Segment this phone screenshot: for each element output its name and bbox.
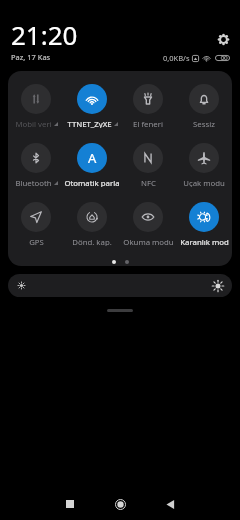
staticText: GPS (29, 237, 44, 246)
staticText: Bluetooth (15, 178, 52, 187)
button[interactable]: Uçak modu (176, 143, 232, 187)
staticText: Sessiz (193, 119, 215, 128)
staticText: Mobil veri (15, 119, 52, 128)
button[interactable]: NFC (120, 143, 176, 187)
staticText: A (88, 149, 97, 167)
staticText: Paz, 17 Kas (11, 52, 51, 62)
button[interactable]: Brightness (8, 274, 232, 297)
staticText: Uçak modu (183, 178, 225, 187)
button[interactable]: Sessiz (176, 84, 232, 128)
staticText: 0,0KB/s (163, 53, 190, 63)
button[interactable]: GPS (8, 202, 64, 246)
staticText: Okuma modu (123, 237, 174, 246)
button[interactable]: El feneri (120, 84, 176, 128)
button[interactable]: Back (158, 492, 182, 516)
button[interactable]: Settings (212, 28, 234, 50)
button[interactable]: Home (108, 492, 132, 516)
staticText: El feneri (133, 119, 163, 128)
button[interactable]: Karanlık mod (176, 202, 232, 246)
button[interactable]: Bluetooth (8, 143, 64, 187)
staticText: Dönd. kap. (72, 237, 112, 246)
staticText: NFC (141, 178, 156, 187)
button[interactable]: Mobil veri (8, 84, 64, 128)
button[interactable]: Dönd. kap. (64, 202, 120, 246)
button[interactable]: Recents (58, 492, 82, 516)
staticText: Karanlık mod (180, 237, 229, 246)
staticText: 21:20 (11, 17, 78, 52)
button[interactable]: Okuma modu (120, 202, 176, 246)
staticText: Otomatik parla (64, 178, 120, 187)
staticText: TTNET_ZyXE (67, 119, 112, 128)
button[interactable]: TTNET_ZyXE (64, 84, 120, 128)
button[interactable]: A (64, 143, 120, 187)
